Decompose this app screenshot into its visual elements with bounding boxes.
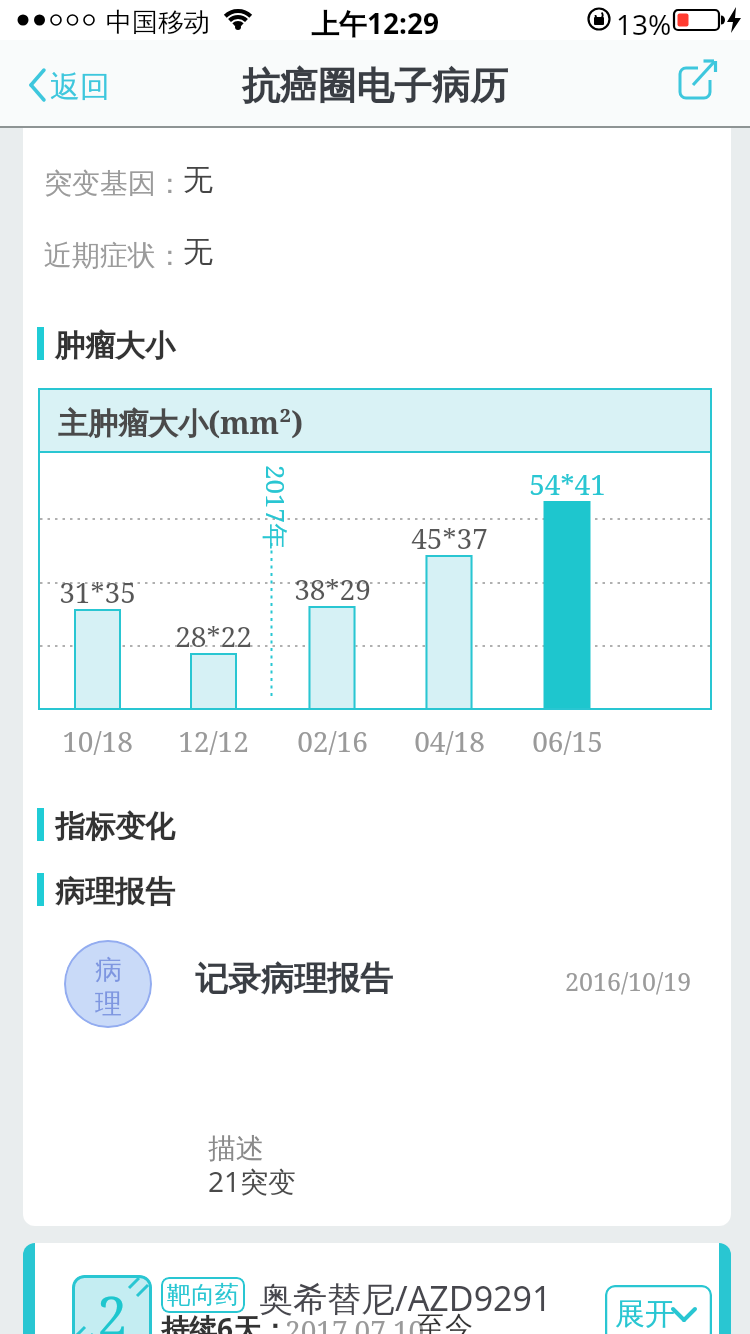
staticText: 突变基因： (44, 166, 184, 201)
staticText: 抗癌圈电子病历 (242, 62, 508, 110)
staticText: 02/16 (297, 722, 368, 760)
staticText: 无 (183, 233, 213, 271)
staticText: 38*29 (294, 570, 371, 608)
staticText: 2017年 (260, 465, 294, 550)
staticText: 持续6天： (161, 1309, 290, 1334)
staticText: 描述 (208, 1131, 264, 1166)
staticText: 中国移动 (106, 6, 210, 39)
button[interactable]: 病 (23, 928, 731, 1040)
staticText: 12/12 (178, 722, 249, 760)
staticText: 理 (95, 987, 122, 1021)
staticText: 肿瘤大小 (55, 327, 175, 365)
staticText: 上午12:29 (311, 4, 439, 42)
staticText: 近期症状： (44, 238, 184, 273)
staticText: 28*22 (175, 617, 252, 655)
staticText: 病理报告 (55, 873, 175, 911)
staticText: 06/15 (532, 722, 603, 760)
button[interactable]: 2 (23, 1243, 731, 1334)
staticText: 45*37 (411, 519, 488, 557)
staticText: 2016/10/19 (565, 964, 692, 998)
button[interactable]: 展开 (605, 1285, 712, 1334)
staticText: 病 (95, 953, 122, 987)
staticText: 无 (183, 161, 213, 199)
staticText: 31*35 (59, 573, 136, 611)
staticText: 54*41 (529, 465, 606, 503)
button[interactable]: 返回 (20, 65, 130, 105)
staticText: 至今 (417, 1309, 473, 1334)
staticText: 21突变 (208, 1162, 297, 1200)
staticText: 13% (616, 5, 672, 43)
staticText: 指标变化 (55, 808, 175, 846)
button[interactable] (674, 58, 722, 106)
staticText: 10/18 (62, 722, 133, 760)
staticText: 2 (97, 1278, 128, 1334)
staticText: 04/18 (414, 722, 485, 760)
staticText: 返回 (50, 68, 110, 106)
staticText: 主肿瘤大小(mm²) (58, 402, 304, 443)
staticText: 靶向药 (167, 1280, 239, 1310)
staticText: 奥希替尼/AZD9291 (259, 1275, 552, 1321)
staticText: 展开 (615, 1295, 675, 1333)
staticText: 记录病理报告 (195, 958, 393, 1000)
staticText: 2017.07.10 (285, 1311, 425, 1334)
